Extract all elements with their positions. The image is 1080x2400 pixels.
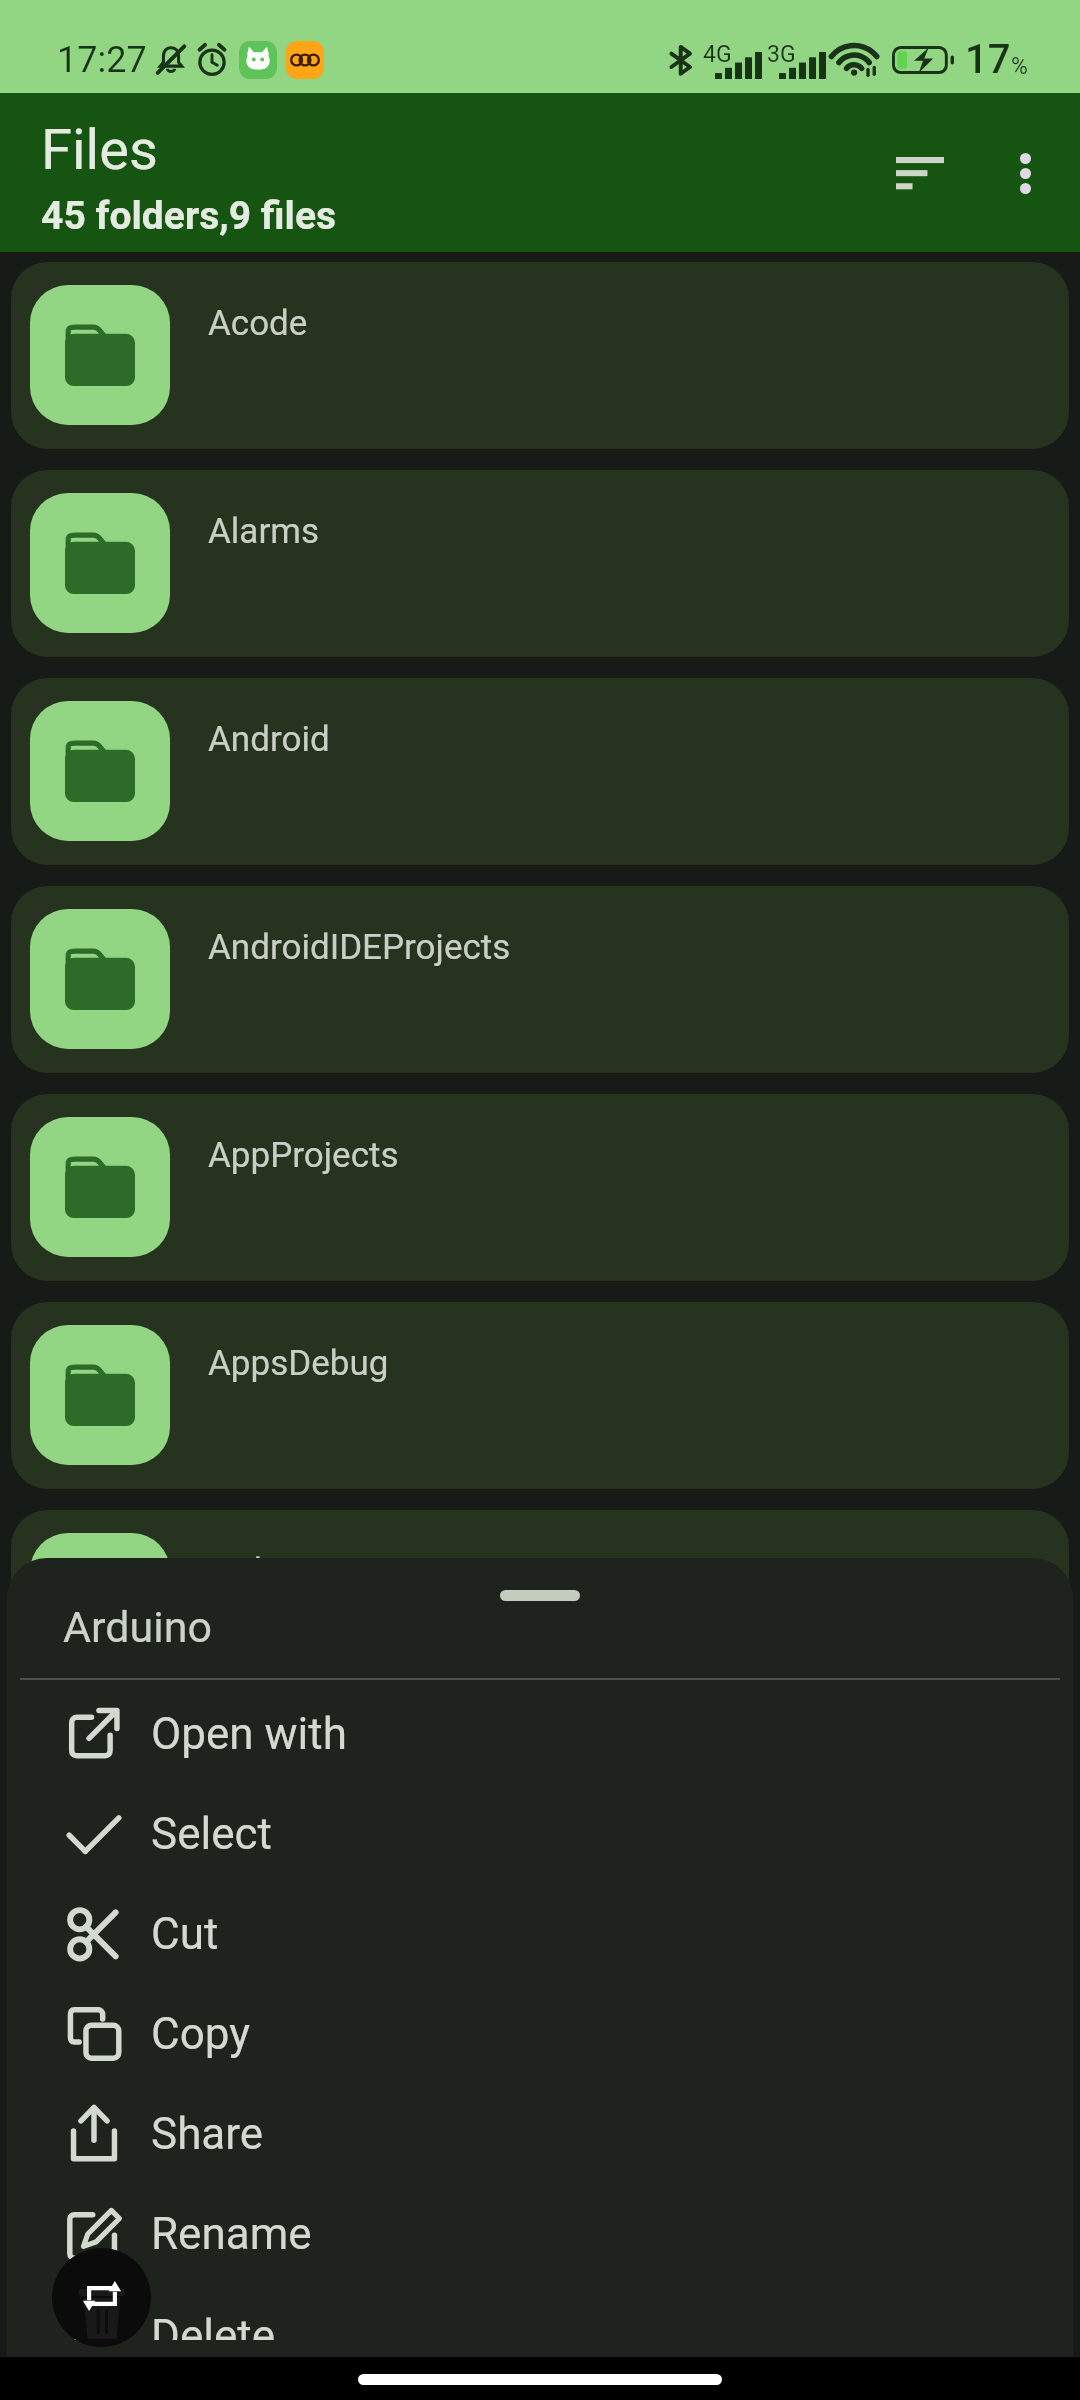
staticText: AndroidIDEProjects [208,927,511,968]
staticText: 45 folders,9 files [41,193,337,239]
staticText: 3G [767,41,796,68]
staticText: Copy [151,2008,251,2060]
button[interactable]: Share [7,2084,1073,2184]
staticText: % [1011,53,1028,80]
staticText: Files [41,117,158,183]
button[interactable]: Android [11,678,1069,865]
button[interactable]: Open with [7,1684,1073,1784]
button[interactable]: Rename [7,2184,1073,2284]
button[interactable]: AppsDebug [11,1302,1069,1489]
staticText: Alarms [208,511,319,552]
button[interactable]: Copy [7,1984,1073,2084]
staticText: AppsDebug [208,1343,389,1384]
staticText: Android [208,719,330,760]
button[interactable]: AppProjects [11,1094,1069,1281]
staticText: Delete [151,2310,275,2340]
staticText: AppProjects [208,1135,399,1176]
staticText: Share [151,2108,264,2160]
button[interactable]: Delete [7,2286,1073,2340]
staticText: Cut [151,1908,219,1960]
staticText: Arduino [208,1551,330,1592]
staticText: Open with [151,1708,347,1760]
button[interactable]: Sort [872,125,968,221]
button[interactable]: Arduino [11,1510,1069,1697]
button[interactable]: Cut [7,1884,1073,1984]
staticText: Select [151,1808,272,1860]
staticText: Rename [151,2208,312,2260]
button[interactable]: AndroidIDEProjects [11,886,1069,1073]
staticText: 4G [703,41,732,68]
button[interactable]: More options [977,125,1073,221]
button[interactable]: Acode [11,262,1069,449]
button[interactable]: Select [7,1784,1073,1884]
staticText: 17 [965,36,1011,83]
staticText: 17:27 [57,39,147,81]
button[interactable]: Backups [11,1926,1069,2113]
button[interactable]: Swap [52,2248,151,2347]
staticText: Arduino [63,1602,212,1652]
button[interactable]: Audiobooks [11,1718,1069,1905]
staticText: Acode [208,303,308,344]
button[interactable]: Alarms [11,470,1069,657]
